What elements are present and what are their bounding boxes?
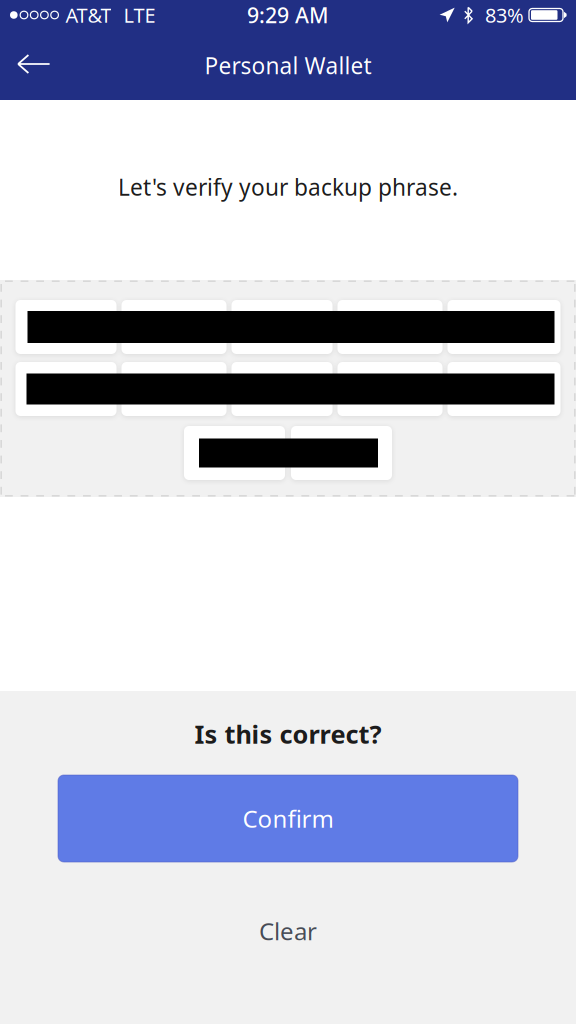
- button[interactable]: Back: [0, 44, 64, 92]
- staticText: AT&T: [65, 2, 111, 28]
- button[interactable]: Backup word: [231, 362, 332, 416]
- staticText: LTE: [123, 2, 155, 28]
- staticText: Let's verify your backup phrase.: [118, 172, 458, 202]
- staticText: Clear: [259, 915, 317, 947]
- button[interactable]: Backup word: [337, 362, 442, 416]
- button[interactable]: Backup word: [121, 362, 226, 416]
- staticText: Is this correct?: [194, 717, 381, 751]
- button[interactable]: Confirm: [58, 775, 518, 862]
- button[interactable]: Backup word: [337, 300, 442, 354]
- staticText: 83%: [485, 2, 524, 28]
- button[interactable]: Backup word: [15, 300, 116, 354]
- button[interactable]: Backup word: [447, 362, 560, 416]
- staticText: Confirm: [242, 803, 333, 834]
- button[interactable]: Backup word: [231, 300, 332, 354]
- button[interactable]: Backup word: [447, 300, 560, 354]
- button[interactable]: Backup word: [291, 426, 392, 480]
- button[interactable]: Backup word: [184, 426, 285, 480]
- button[interactable]: Backup word: [15, 362, 116, 416]
- button[interactable]: Backup word: [121, 300, 226, 354]
- button[interactable]: Clear: [188, 915, 388, 947]
- staticText: Personal Wallet: [204, 50, 371, 80]
- staticText: 9:29 AM: [247, 1, 329, 29]
